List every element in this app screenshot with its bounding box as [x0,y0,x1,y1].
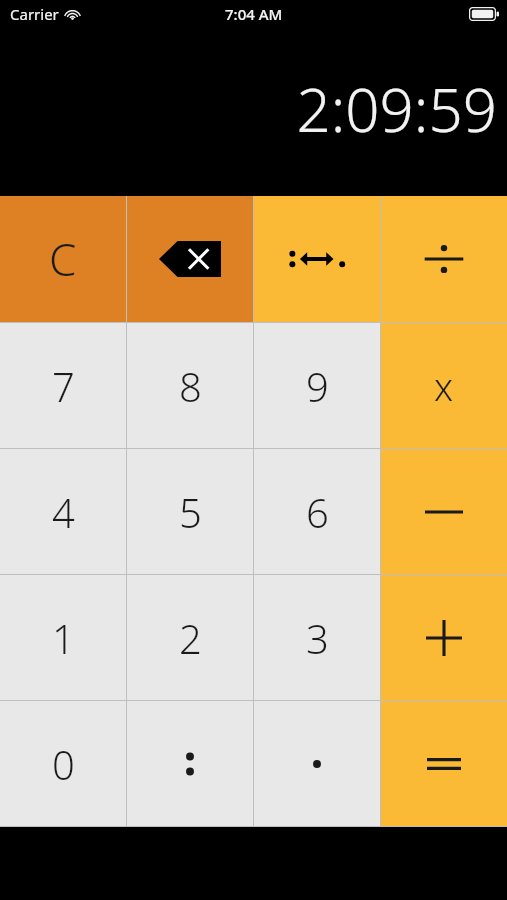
staticText: 2:09:59 [296,68,497,150]
staticText: 7 [52,359,75,413]
button[interactable]: Minus [381,449,507,574]
button[interactable]: 2 [127,575,253,700]
staticText: x [434,360,454,412]
staticText: 4 [52,485,75,539]
button[interactable]: 3 [254,575,380,700]
staticText: 8 [179,359,202,413]
button[interactable]: Multiply [381,323,507,448]
staticText: 9 [306,359,329,413]
button[interactable]: C [0,196,126,322]
button[interactable]: 1 [0,575,126,700]
button[interactable]: 4 [0,449,126,574]
button[interactable]: Divide [381,196,507,322]
button[interactable]: Equals [381,701,507,826]
button[interactable]: 9 [254,323,380,448]
staticText: C [49,229,77,289]
staticText: 3 [306,611,329,665]
button[interactable]: Backspace [127,196,253,322]
staticText: 7:04 AM [225,4,283,24]
button[interactable]: Decimal point [254,701,380,826]
staticText: 2 [179,611,202,665]
button[interactable]: Colon [127,701,253,826]
staticText: 1 [52,611,75,665]
button[interactable]: 8 [127,323,253,448]
staticText: 6 [306,485,329,539]
staticText: 5 [179,485,202,539]
button[interactable]: 7 [0,323,126,448]
button[interactable]: 6 [254,449,380,574]
staticText: Carrier [10,4,59,24]
button[interactable]: Convert [254,196,380,322]
button[interactable]: Plus [381,575,507,700]
button[interactable]: 5 [127,449,253,574]
staticText: 0 [52,737,75,791]
button[interactable]: 0 [0,701,126,826]
